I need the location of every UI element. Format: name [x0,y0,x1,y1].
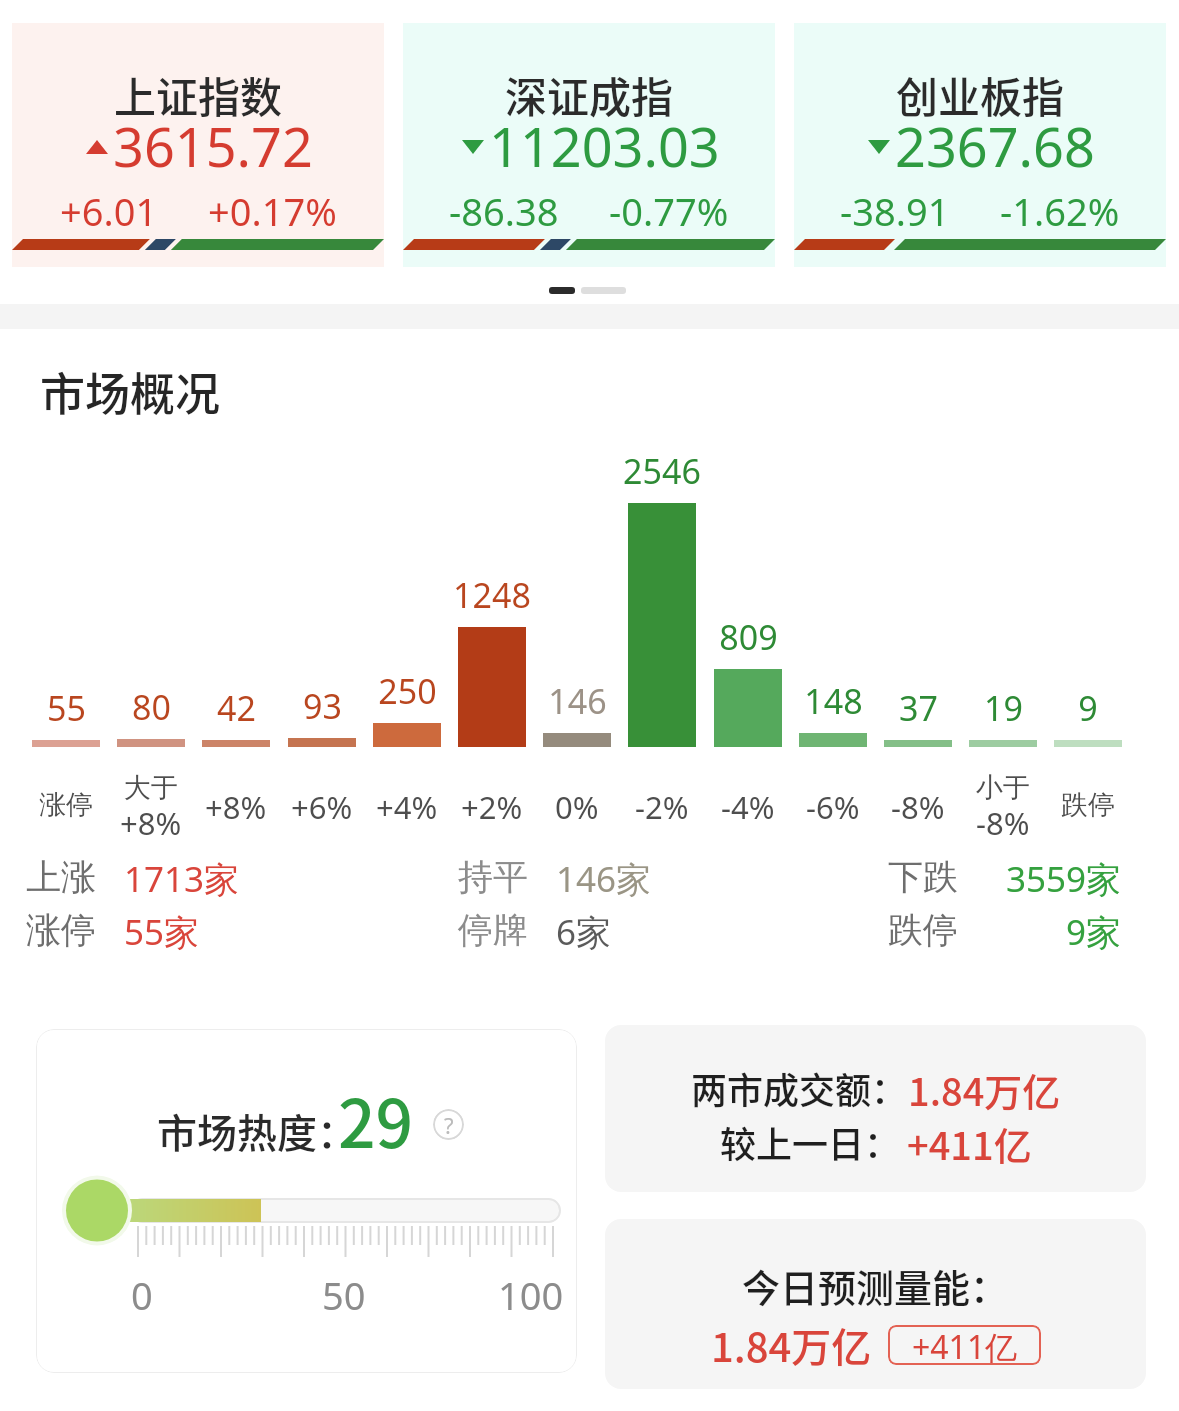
staticText: +6.01 [60,185,158,237]
staticText: 11203.03 [489,109,720,183]
staticText: 1248 [453,572,531,618]
button[interactable]: Page 1 [549,287,575,294]
button[interactable]: 小于 -8% 19 [969,736,1037,747]
staticText: 80 [132,684,171,730]
staticText: -0.77% [609,185,729,237]
staticText: 1.84万亿 [711,1316,872,1374]
staticText: 2546 [623,448,701,494]
staticText: 148 [804,678,863,724]
button[interactable]: -4% 809 [714,665,782,747]
button[interactable]: -2% 2546 [628,499,696,747]
button[interactable]: 跌停 9 [1054,736,1122,747]
button[interactable]: 涨停 55 [32,736,100,747]
staticText: 3615.72 [113,109,313,183]
staticText: 0 [131,1269,153,1321]
staticText: 跌停 [1061,788,1115,819]
button[interactable]: 深证成指 [403,23,775,267]
staticText: -86.38 [449,185,559,237]
staticText: +411亿 [907,1116,1032,1171]
staticText: -6% [806,786,860,820]
staticText: 146 [548,678,607,724]
staticText: +0.17% [208,185,337,237]
staticText: +8% [205,786,267,820]
staticText: 55家 [124,908,200,956]
staticText: -1.62% [1000,185,1120,237]
staticText: 今日预测量能： [742,1258,1009,1313]
staticText: 跌停 [888,908,958,952]
staticText: 市场热度： [157,1102,357,1160]
button[interactable]: -6% 148 [799,729,867,747]
staticText: 0% [555,786,599,820]
staticText: 上证指数 [114,64,283,125]
staticText: 小于 [976,771,1030,802]
staticText: 两市成交额： [691,1062,908,1114]
staticText: +6% [291,786,353,820]
staticText: -8% [976,802,1030,836]
staticText: 29 [338,1071,414,1167]
button[interactable]: 两市成交额： [605,1025,1146,1192]
button[interactable]: +2% 1248 [458,623,526,747]
button[interactable]: +4% 250 [373,719,441,747]
staticText: -8% [891,786,945,820]
staticText: 19 [984,685,1023,731]
staticText: 809 [719,614,778,660]
staticText: 100 [498,1269,564,1321]
staticText: 1713家 [124,855,240,903]
button[interactable]: Help [433,1109,464,1140]
staticText: 42 [217,685,256,731]
staticText: 市场概况 [40,359,221,424]
button[interactable]: 大于 +8% 80 [117,735,185,747]
staticText: 2367.68 [895,109,1095,183]
staticText: +411亿 [912,1325,1018,1365]
button[interactable]: +6% 93 [288,734,356,747]
staticText: 上涨 [26,855,96,899]
staticText: -38.91 [840,185,950,237]
staticText: 37 [899,685,938,731]
staticText: +8% [120,802,182,836]
staticText: 146家 [556,855,652,903]
staticText: 深证成指 [505,64,674,125]
staticText: 创业板指 [896,64,1065,125]
staticText: 下跌 [888,855,958,899]
button[interactable]: 今日预测量能： [605,1219,1146,1389]
staticText: 55 [47,685,86,731]
button[interactable]: +8% 42 [202,736,270,747]
staticText: 较上一日： [720,1116,901,1168]
staticText: 3559家 [1006,855,1122,903]
staticText: +4% [376,786,438,820]
staticText: 9 [1078,685,1098,731]
staticText: 6家 [556,908,612,956]
staticText: 1.84万亿 [908,1062,1061,1117]
button[interactable]: Page 2 [581,287,626,294]
staticText: -4% [721,786,775,820]
staticText: 9家 [1066,908,1122,956]
button[interactable]: -8% 37 [884,736,952,747]
staticText: 93 [303,683,342,729]
staticText: -2% [635,786,689,820]
button[interactable]: 市场热度： [36,1029,577,1373]
staticText: 大于 [124,771,178,802]
button[interactable]: 创业板指 [794,23,1166,267]
staticText: 停牌 [458,908,528,952]
button[interactable]: 上证指数 [12,23,384,267]
staticText: 持平 [458,855,528,899]
staticText: 250 [378,668,437,714]
staticText: 涨停 [39,788,93,819]
button[interactable]: 0% 146 [543,729,611,747]
staticText: ? [444,1110,454,1140]
staticText: 50 [322,1269,366,1321]
staticText: +2% [461,786,523,820]
staticText: 涨停 [26,908,96,952]
